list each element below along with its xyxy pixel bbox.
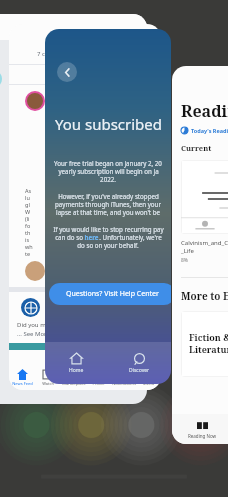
- staticText: fo: [25, 222, 31, 229]
- staticText: lapse at that time, and you won't be: [56, 208, 160, 216]
- button[interactable]: Home: [45, 342, 108, 384]
- staticText: Reading Now: [188, 433, 217, 439]
- staticText: Questions? Visit Help Center: [66, 289, 159, 299]
- button[interactable]: Notifications: [111, 364, 136, 390]
- staticText: 2022.: [100, 175, 116, 183]
- staticText: (li: [25, 215, 30, 222]
- staticText: More to E: [181, 289, 228, 303]
- staticText: News Feed: [12, 381, 33, 386]
- staticText: Current: [181, 143, 212, 153]
- staticText: gl: [25, 201, 30, 208]
- staticText: Profile: [92, 381, 105, 386]
- staticText: . Unfortunately, we're: [99, 233, 162, 241]
- staticText: yearly subscription will begin on Ja: [58, 167, 159, 175]
- staticText: yu: [50, 162, 57, 169]
- staticText: Calvinism_and_C: [181, 239, 228, 247]
- staticText: th: [25, 229, 31, 236]
- staticText: is: [25, 236, 30, 243]
- staticText: payments through iTunes, then your: [55, 200, 161, 208]
- staticText: ... See More: [17, 330, 50, 338]
- button[interactable]: Marketplace: [61, 364, 86, 390]
- staticText: Literature: [189, 343, 228, 355]
- button[interactable]: Profile: [86, 364, 111, 390]
- staticText: Home: [69, 367, 84, 374]
- staticText: Today's Readi: [191, 127, 228, 134]
- staticText: lu: [25, 194, 30, 201]
- staticText: Notifications: [112, 381, 136, 386]
- staticText: wh: [25, 243, 33, 250]
- staticText: Reading: [181, 100, 228, 122]
- staticText: Marketplace: [62, 381, 86, 386]
- staticText: Discover: [129, 367, 150, 374]
- staticText: If you would like to stop recurring pay: [53, 225, 164, 233]
- staticText: W: [25, 208, 31, 215]
- button[interactable]: Back: [45, 29, 171, 384]
- staticText: ne: [50, 155, 57, 162]
- button[interactable]: Reading: [172, 66, 228, 444]
- staticText: can do so: [54, 233, 84, 241]
- button[interactable]: Fiction &: [181, 311, 228, 377]
- staticText: Menu: [143, 381, 154, 386]
- button[interactable]: 7 comments: [9, 24, 161, 390]
- staticText: As: [25, 187, 32, 194]
- button[interactable]: Watch: [35, 364, 61, 390]
- button[interactable]: You: [0, 14, 147, 404]
- staticText: Fiction &: [189, 331, 228, 343]
- button[interactable]: [181, 160, 228, 234]
- staticText: Your free trial began on January 2, 20: [54, 159, 162, 167]
- button[interactable]: Questions? Visit Help Center: [49, 283, 171, 305]
- staticText: Whi: [45, 300, 58, 309]
- staticText: 8%: [181, 257, 189, 264]
- staticText: _Life: [181, 247, 194, 255]
- button[interactable]: here: [84, 233, 99, 241]
- button[interactable]: News Feed: [9, 364, 35, 390]
- button[interactable]: Menu: [136, 364, 161, 390]
- staticText: You subscribed on: [55, 114, 171, 134]
- staticText: Did you mis: [17, 321, 51, 329]
- staticText: te: [25, 250, 31, 257]
- button[interactable]: Discover: [108, 342, 171, 384]
- staticText: Watch: [42, 381, 54, 386]
- button[interactable]: Back: [57, 62, 77, 82]
- staticText: However, if you've already stopped: [58, 192, 159, 200]
- staticText: 7 comments: [37, 50, 72, 58]
- button[interactable]: Reading Now: [172, 414, 228, 444]
- staticText: do so on your behalf.: [77, 241, 139, 249]
